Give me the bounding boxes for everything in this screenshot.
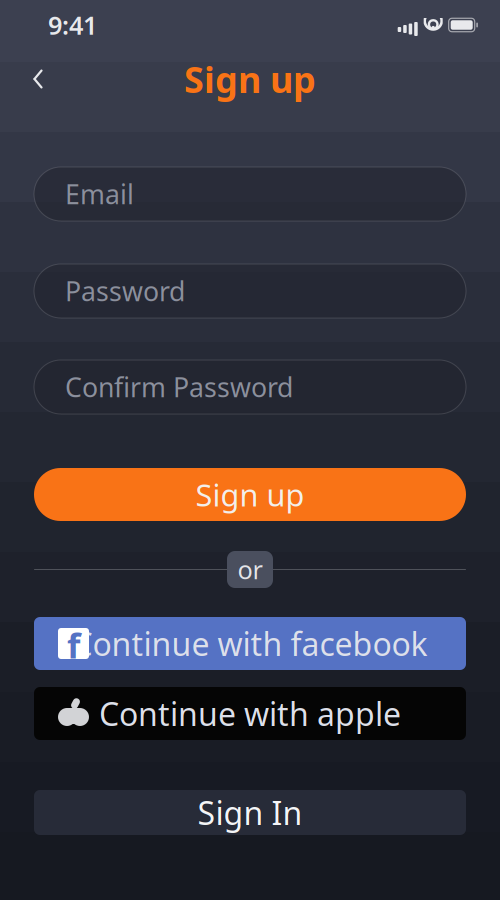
staticText: Sign up <box>195 474 304 515</box>
button[interactable]: Back <box>16 57 60 101</box>
staticText: Continue with facebook <box>72 622 427 665</box>
staticText: Confirm Password <box>65 369 293 405</box>
staticText: Continue with apple <box>99 692 401 735</box>
button[interactable]: Sign In <box>34 790 466 835</box>
staticText: Sign up <box>184 55 316 103</box>
staticText: Email <box>65 176 134 212</box>
staticText: f <box>67 622 80 668</box>
staticText: or <box>237 553 262 586</box>
button[interactable]: Continue with apple <box>34 687 466 740</box>
staticText: Sign In <box>197 791 302 834</box>
staticText: 9:41 <box>48 8 97 42</box>
staticText: Password <box>65 273 185 309</box>
button[interactable]: Sign up <box>34 468 466 521</box>
button[interactable]: Continue with facebook <box>34 617 466 670</box>
